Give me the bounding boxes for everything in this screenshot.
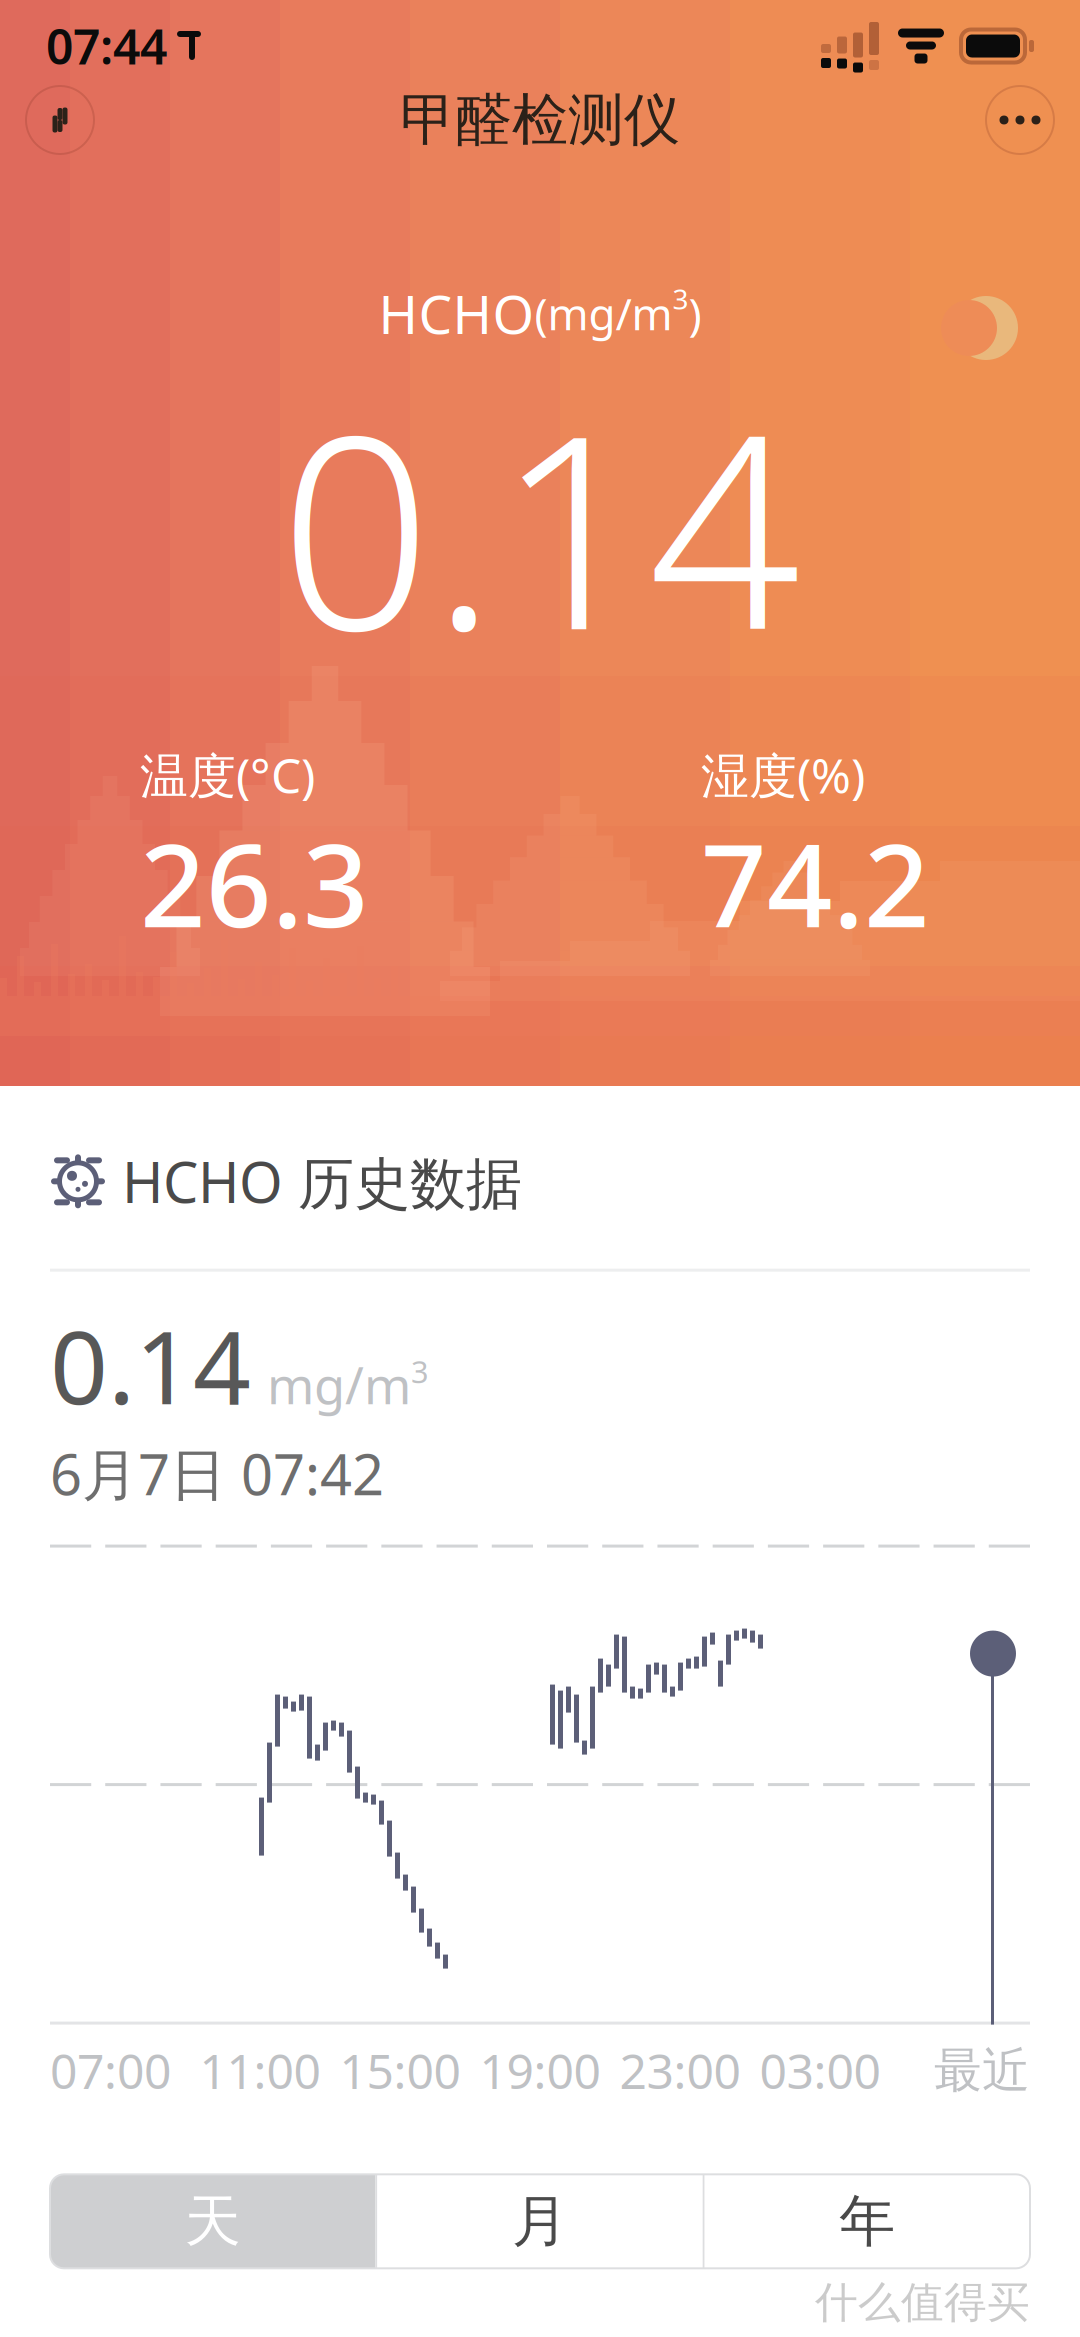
staticText: 26.3: [140, 807, 369, 959]
staticText: 最近: [934, 2041, 1030, 2100]
staticText: ): [688, 284, 701, 342]
staticText: 月: [512, 2187, 568, 2256]
staticText: 15:00: [339, 2039, 460, 2102]
staticText: 温度(°C): [140, 743, 315, 807]
staticText: 3: [672, 280, 688, 317]
staticText: 年: [839, 2187, 895, 2256]
button[interactable]: More options: [986, 86, 1054, 154]
staticText: 湿度(%): [701, 743, 865, 807]
staticText: (mg/m: [534, 284, 672, 342]
button[interactable]: Back: [26, 86, 94, 154]
staticText: 03:00: [759, 2039, 880, 2102]
staticText: HCHO 历史数据: [122, 1144, 522, 1219]
staticText: 11:00: [199, 2039, 320, 2102]
staticText: 什么值得买: [815, 2276, 1030, 2329]
staticText: 19:00: [479, 2039, 600, 2102]
staticText: HCHO: [378, 278, 534, 349]
staticText: 23:00: [619, 2039, 740, 2102]
staticText: 0.14: [279, 349, 800, 703]
staticText: 74.2: [701, 807, 930, 959]
staticText: 天: [185, 2187, 241, 2256]
staticText: 07:44: [46, 14, 167, 78]
staticText: mg/m: [267, 1351, 411, 1418]
staticText: 甲醛检测仪: [400, 86, 680, 154]
button[interactable]: 月: [377, 2174, 703, 2268]
staticText: 3: [411, 1351, 429, 1392]
button[interactable]: 天: [50, 2174, 375, 2268]
button[interactable]: 年: [705, 2174, 1030, 2268]
staticText: 6月7日 07:42: [50, 1436, 384, 1511]
staticText: 0.14: [50, 1298, 251, 1432]
staticText: 07:00: [50, 2039, 171, 2102]
